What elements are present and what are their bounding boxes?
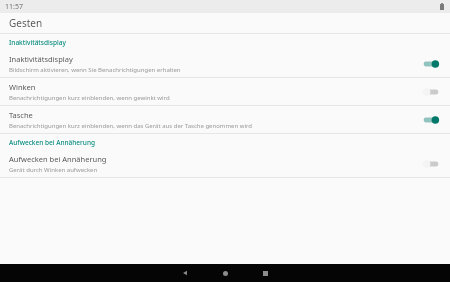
staticText: Benachrichtigungen kurz einblenden, wenn… [9,94,170,102]
staticText: Bildschirm aktivieren, wenn Sie Benachri… [9,66,181,74]
button[interactable]: Übersicht [245,264,285,282]
button[interactable]: Winken [0,78,450,105]
staticText: Gesten [9,16,43,30]
staticText: Tasche [9,110,33,120]
button[interactable]: Aufwecken bei Annäherung [0,150,450,177]
staticText: Benachrichtigungen kurz einblenden, wenn… [9,122,253,130]
button[interactable]: Aus [421,157,441,171]
button[interactable]: Inaktivitätsdisplay [0,50,450,77]
button[interactable]: Ein [421,57,441,71]
staticText: Aufwecken bei Annäherung [9,154,107,164]
staticText: Inaktivitätsdisplay [9,54,73,64]
staticText: Aufwecken bei Annäherung [9,138,96,147]
button[interactable]: Tasche [0,106,450,133]
staticText: 11:57 [5,2,23,12]
button[interactable]: Ein [421,113,441,127]
staticText: Gerät durch Winken aufwecken [9,166,98,174]
staticText: Winken [9,82,36,92]
button[interactable]: Startbildschirm [205,264,245,282]
button[interactable]: Aus [421,85,441,99]
button[interactable]: Zurück [165,264,205,282]
staticText: Inaktivitätsdisplay [9,38,66,47]
